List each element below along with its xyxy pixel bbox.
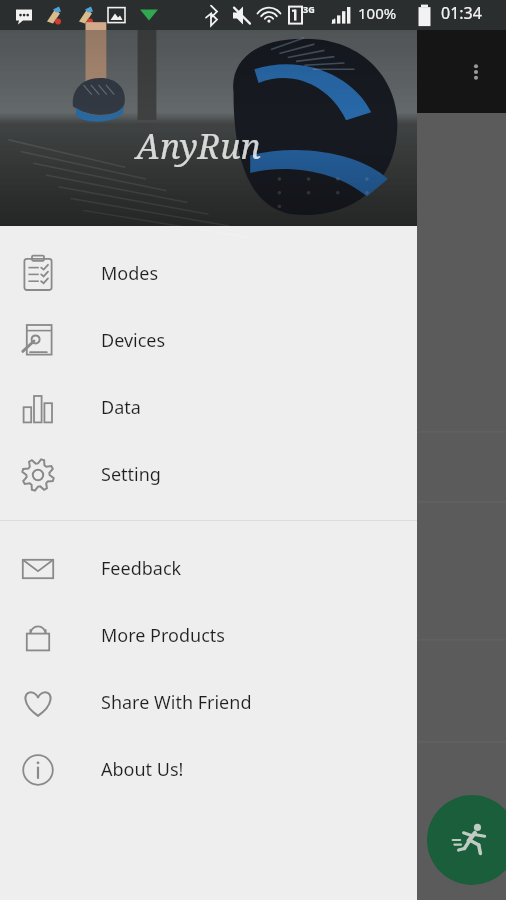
button[interactable]: More Products <box>0 602 417 669</box>
staticText: 100% <box>358 3 397 23</box>
button[interactable]: About Us! <box>0 736 417 803</box>
staticText: Data <box>101 395 141 420</box>
staticText: Modes <box>101 261 159 286</box>
staticText: Devices <box>101 328 166 353</box>
staticText: Setting <box>101 462 161 487</box>
staticText: Feedback <box>101 556 182 581</box>
staticText: Share With Friend <box>101 690 252 715</box>
button[interactable]: Setting <box>0 441 417 508</box>
staticText: 01:34 <box>441 2 482 24</box>
button[interactable]: Modes <box>0 240 417 307</box>
button[interactable]: Devices <box>0 307 417 374</box>
staticText: More Products <box>101 623 225 648</box>
button[interactable]: Data <box>0 374 417 441</box>
staticText: About Us! <box>101 757 184 782</box>
button[interactable]: Start running <box>427 795 506 885</box>
button[interactable]: More options <box>452 48 500 96</box>
staticText: 3G <box>303 3 315 15</box>
staticText: AnyRun <box>136 123 261 169</box>
button[interactable]: Share With Friend <box>0 669 417 736</box>
button[interactable]: Feedback <box>0 535 417 602</box>
